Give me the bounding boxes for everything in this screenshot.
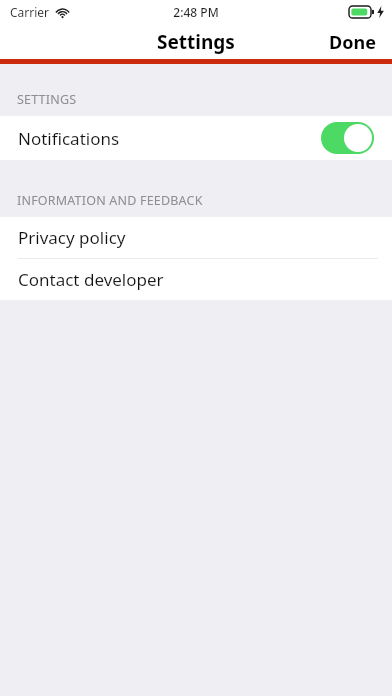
staticText: Notifications — [18, 127, 120, 150]
staticText: Carrier — [10, 4, 50, 20]
button[interactable]: Done — [313, 24, 392, 59]
button[interactable]: Notifications — [0, 116, 392, 160]
button[interactable]: Privacy policy — [0, 217, 392, 258]
staticText: Settings — [157, 29, 235, 55]
button[interactable]: Notifications toggle, on — [321, 122, 374, 154]
button[interactable]: Contact developer — [0, 259, 392, 300]
staticText: 2:48 PM — [173, 4, 219, 20]
staticText: Contact developer — [18, 268, 164, 291]
staticText: Privacy policy — [18, 226, 126, 249]
staticText: Done — [329, 30, 376, 53]
staticText: INFORMATION AND FEEDBACK — [17, 192, 203, 209]
staticText: SETTINGS — [17, 91, 77, 108]
